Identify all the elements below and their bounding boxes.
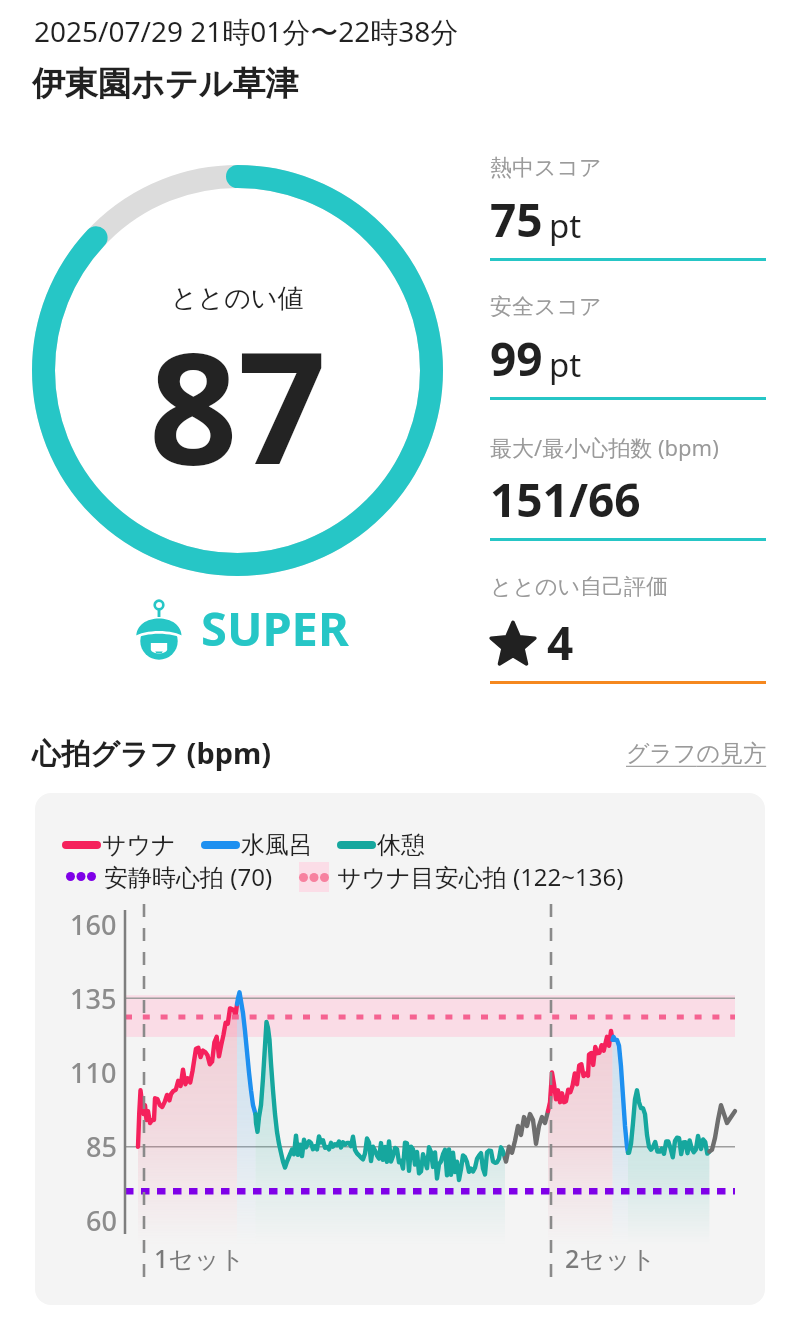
- staticText: 160: [70, 906, 117, 943]
- staticText: SUPER: [201, 596, 349, 660]
- staticText: 151/66: [490, 468, 641, 531]
- staticText: 2セット: [565, 1241, 657, 1275]
- staticText: 87: [149, 298, 327, 509]
- staticText: 心拍グラフ (bpm): [32, 733, 272, 773]
- staticText: 水風呂: [241, 830, 313, 860]
- staticText: 4: [547, 611, 574, 674]
- staticText: pt: [549, 342, 582, 387]
- staticText: 99: [490, 327, 543, 390]
- staticText: pt: [549, 203, 582, 248]
- other: Sauna rank: [135, 599, 183, 659]
- staticText: 安静時心拍 (70): [104, 860, 273, 893]
- staticText: 110: [70, 1054, 117, 1091]
- staticText: 2025/07/29 21時01分〜22時38分: [34, 12, 459, 50]
- staticText: 85: [86, 1128, 117, 1165]
- button[interactable]: Sauna rank: [135, 597, 349, 661]
- staticText: 最大/最小心拍数 (bpm): [490, 432, 719, 462]
- staticText: 伊東園ホテル草津: [32, 63, 299, 105]
- staticText: 安全スコア: [490, 293, 602, 321]
- button[interactable]: グラフの見方: [626, 739, 767, 768]
- staticText: 135: [70, 980, 117, 1017]
- staticText: グラフの見方: [626, 739, 767, 768]
- staticText: 1セット: [154, 1241, 246, 1275]
- staticText: ととのい自己評価: [490, 573, 669, 601]
- staticText: 熱中スコア: [490, 154, 602, 182]
- staticText: 60: [86, 1202, 117, 1239]
- staticText: サウナ目安心拍 (122~136): [337, 860, 624, 893]
- staticText: 75: [490, 188, 543, 251]
- staticText: サウナ: [102, 830, 176, 860]
- staticText: 休憩: [377, 830, 425, 860]
- staticText: ととのい値: [171, 282, 304, 315]
